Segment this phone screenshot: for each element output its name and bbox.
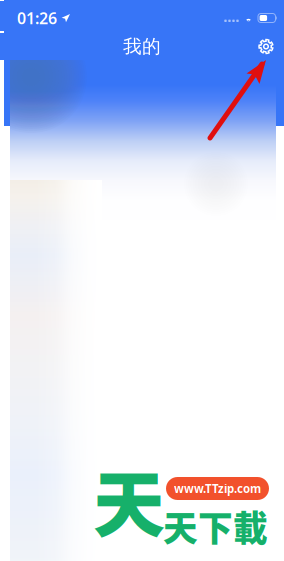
button[interactable]: Settings [253, 33, 279, 59]
staticText: 01:26 [17, 7, 57, 29]
staticText: 我的 [123, 35, 161, 58]
staticText: 天下載 [163, 501, 268, 551]
staticText: 天 [93, 447, 165, 551]
staticText: www.TTzip.com [174, 481, 261, 496]
